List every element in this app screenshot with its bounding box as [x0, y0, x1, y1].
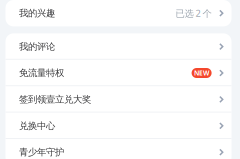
button[interactable]: 青少年守护 [5, 139, 231, 159]
staticText: 免流量特权 [19, 67, 64, 79]
button[interactable]: 签到领壹立兑大奖 [5, 86, 231, 113]
staticText: 青少年守护 [19, 146, 64, 158]
staticText: 已选 2 个 [176, 7, 212, 19]
button[interactable]: 免流量特权 [5, 60, 231, 86]
button[interactable]: 兑换中心 [5, 113, 231, 139]
button[interactable]: 我的兴趣 [5, 0, 231, 26]
staticText: 我的评论 [19, 41, 55, 52]
staticText: 兑换中心 [19, 120, 55, 132]
button[interactable]: 我的评论 [5, 33, 231, 60]
staticText: NEW [194, 69, 209, 77]
staticText: 签到领壹立兑大奖 [19, 94, 91, 105]
staticText: 我的兴趣 [19, 7, 55, 19]
